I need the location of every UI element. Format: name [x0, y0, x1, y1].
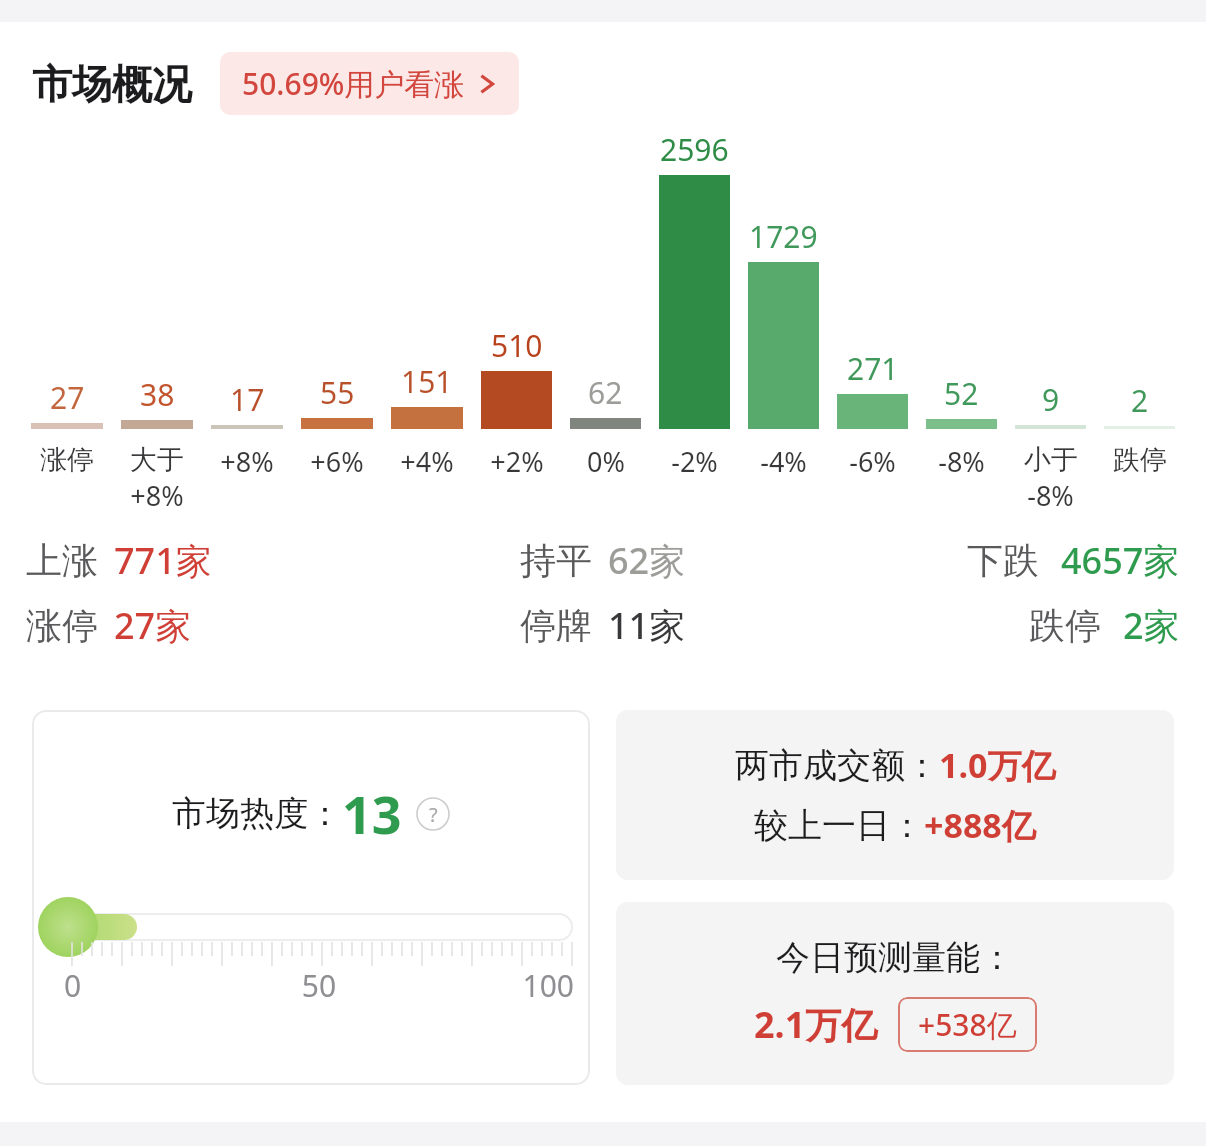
staticText: 两市成交额：: [735, 744, 939, 787]
staticText: 50.69%用户看涨: [242, 63, 465, 104]
staticText: 2: [1131, 380, 1149, 421]
staticText: +8%: [220, 443, 274, 480]
staticText: 小于: [1024, 443, 1078, 477]
staticText: 38: [140, 374, 175, 415]
staticText: 2家: [1123, 601, 1180, 650]
staticText: 0: [64, 965, 234, 1006]
staticText: 1729: [749, 216, 818, 257]
staticText: -6%: [849, 443, 896, 480]
button[interactable]: 今日预测量能：: [616, 902, 1174, 1085]
staticText: +4%: [400, 443, 454, 480]
staticText: 27: [50, 377, 85, 418]
staticText: 11家: [608, 601, 686, 650]
staticText: 1.0万亿: [939, 742, 1056, 788]
staticText: 跌停: [1029, 603, 1101, 648]
staticText: 今日预测量能：: [776, 936, 1014, 979]
button[interactable]: 帮助说明: [416, 797, 450, 831]
staticText: 271: [847, 348, 899, 389]
staticText: 跌停: [1113, 443, 1167, 477]
staticText: 0%: [587, 443, 625, 480]
staticText: 持平: [520, 538, 592, 583]
staticText: +8%: [130, 477, 184, 514]
staticText: 大于: [130, 443, 184, 477]
staticText: 市场热度：: [172, 792, 342, 835]
staticText: -8%: [938, 443, 985, 480]
staticText: 13: [342, 778, 402, 849]
staticText: 100: [404, 965, 574, 1006]
staticText: 2596: [660, 129, 729, 170]
staticText: 62: [588, 372, 623, 413]
staticText: 9: [1042, 379, 1060, 420]
staticText: +888亿: [924, 802, 1036, 848]
staticText: -2%: [671, 443, 718, 480]
button[interactable]: 市场热度：: [32, 710, 590, 1085]
staticText: 50: [234, 965, 404, 1006]
staticText: 4657家: [1061, 536, 1180, 585]
staticText: +6%: [310, 443, 364, 480]
staticText: 下跌: [967, 538, 1039, 583]
staticText: -4%: [760, 443, 807, 480]
staticText: 较上一日：: [754, 804, 924, 847]
staticText: 771家: [114, 536, 212, 585]
staticText: 市场概况: [32, 59, 192, 109]
staticText: 510: [491, 325, 543, 366]
staticText: 停牌: [520, 603, 592, 648]
staticText: 52: [944, 373, 979, 414]
staticText: 2.1万亿: [754, 1000, 878, 1049]
staticText: +538亿: [918, 1004, 1017, 1045]
staticText: 151: [401, 361, 453, 402]
staticText: 涨停: [40, 443, 94, 477]
staticText: 17: [230, 379, 265, 420]
staticText: -8%: [1027, 477, 1074, 514]
staticText: 55: [320, 372, 355, 413]
staticText: 62家: [608, 536, 686, 585]
button[interactable]: 50.69%用户看涨: [220, 52, 519, 115]
staticText: +2%: [490, 443, 544, 480]
staticText: 27家: [114, 601, 192, 650]
staticText: 涨停: [26, 603, 98, 648]
button[interactable]: 两市成交额：: [616, 710, 1174, 880]
staticText: 上涨: [26, 538, 98, 583]
staticText: ?: [429, 801, 438, 828]
